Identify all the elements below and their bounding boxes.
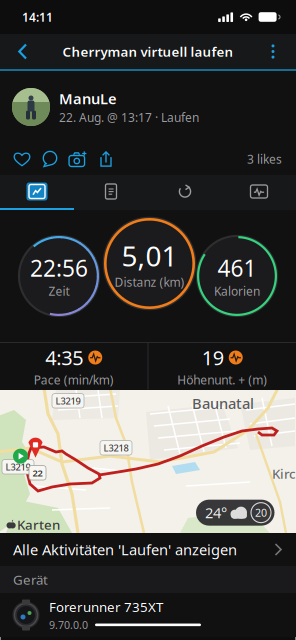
button[interactable]: Share bbox=[92, 145, 120, 173]
staticText: 461 bbox=[217, 253, 256, 283]
staticText: Cherryman virtuell laufen bbox=[62, 43, 233, 60]
button[interactable]: Back bbox=[4, 35, 42, 67]
staticText: 22 bbox=[32, 467, 42, 479]
button[interactable]: Laps bbox=[74, 175, 148, 208]
button[interactable]: Intervals bbox=[148, 175, 222, 208]
staticText: Pace (min/km) bbox=[34, 372, 114, 388]
staticText: 9.70.0.0 bbox=[49, 618, 88, 632]
staticText: 14:11 bbox=[22, 9, 53, 25]
staticText: Forerunner 735XT bbox=[49, 598, 163, 616]
button[interactable]: More options bbox=[254, 35, 292, 67]
staticText: 20 bbox=[255, 506, 267, 520]
staticText: 19 bbox=[202, 344, 224, 371]
staticText: L3219 bbox=[5, 461, 30, 473]
button[interactable]: Add photo bbox=[64, 145, 92, 173]
staticText: L3219 bbox=[55, 395, 80, 407]
staticText: L3218 bbox=[103, 442, 128, 454]
staticText: Baunatal bbox=[192, 394, 254, 413]
button[interactable]: Alle Aktivitäten 'Laufen' anzeigen bbox=[0, 533, 296, 566]
staticText: 4:35 bbox=[45, 344, 83, 371]
button[interactable]: Like bbox=[8, 145, 36, 173]
staticText: 3 likes bbox=[247, 151, 282, 167]
staticText: Kirc bbox=[272, 465, 296, 482]
button[interactable]: Forerunner 735XT bbox=[0, 593, 296, 637]
staticText: ManuLe bbox=[59, 89, 117, 108]
button[interactable]: Summary bbox=[0, 175, 74, 208]
staticText: Kalorien bbox=[214, 283, 260, 299]
staticText: Gerät bbox=[13, 571, 48, 588]
staticText: Alle Aktivitäten 'Laufen' anzeigen bbox=[13, 540, 237, 559]
staticText: 5,01 bbox=[121, 237, 177, 274]
staticText: Höhenunt. + (m) bbox=[177, 372, 267, 388]
staticText: 22. Aug. @ 13:17 · Laufen bbox=[59, 109, 199, 125]
staticText: Zeit bbox=[48, 283, 69, 299]
staticText: 24° bbox=[205, 503, 227, 522]
button[interactable]: Comment bbox=[36, 145, 64, 173]
staticText: 22:56 bbox=[30, 253, 88, 283]
staticText: Karten bbox=[17, 516, 60, 533]
button[interactable]: Charts bbox=[222, 175, 296, 208]
staticText: Distanz (km) bbox=[114, 274, 184, 290]
